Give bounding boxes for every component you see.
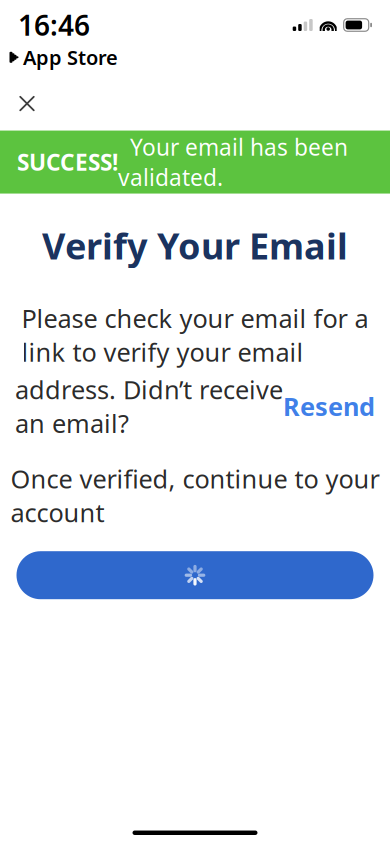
- button[interactable]: Close: [5, 82, 49, 126]
- staticText: 16:46: [18, 6, 90, 44]
- staticText: Resend: [283, 389, 375, 423]
- staticText: App Store: [23, 44, 118, 71]
- button[interactable]: Resend: [283, 389, 375, 423]
- button[interactable]: Continue to your account, loading: [16, 551, 373, 599]
- staticText: Your email has been validated.: [118, 132, 348, 192]
- staticText: Verify Your Email: [42, 222, 348, 269]
- staticText: Once verified, continue to your account: [10, 462, 379, 529]
- staticText: address. Didn’t receive an email?: [15, 373, 283, 440]
- staticText: SUCCESS!: [17, 147, 118, 177]
- staticText: Please check your email for a link to ve…: [21, 301, 368, 369]
